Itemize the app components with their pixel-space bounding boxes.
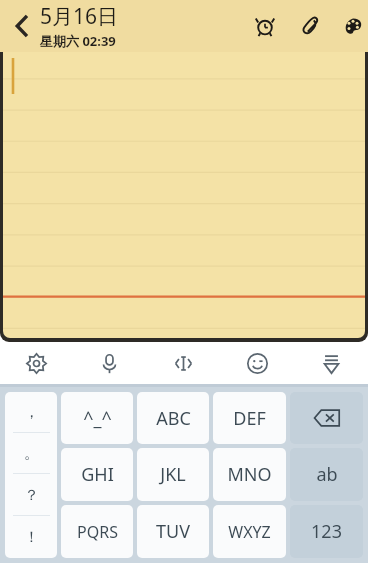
button[interactable]: MNO <box>213 448 286 501</box>
button[interactable]: Back <box>6 6 40 46</box>
staticText: JKL <box>160 462 186 487</box>
button[interactable]: PQRS <box>61 505 133 558</box>
staticText: TUV <box>156 519 190 544</box>
staticText: ！ <box>24 528 39 547</box>
button[interactable]: Settings <box>0 342 73 384</box>
button[interactable]: DEF <box>213 392 286 444</box>
button[interactable] <box>0 52 368 342</box>
button[interactable]: Emoji <box>220 342 294 384</box>
button[interactable]: WXYZ <box>213 505 286 558</box>
button[interactable]: ^_^ <box>61 392 133 444</box>
button[interactable]: 123 <box>290 505 363 558</box>
staticText: MNO <box>227 462 272 487</box>
button[interactable]: ， <box>5 392 57 558</box>
button[interactable]: Alarm <box>248 9 282 43</box>
button[interactable]: Delete <box>290 392 363 444</box>
staticText: ， <box>24 403 39 422</box>
staticText: 星期六 02:39 <box>40 32 116 50</box>
button[interactable]: Attach <box>292 9 326 43</box>
button[interactable]: Hide keyboard <box>294 342 368 384</box>
staticText: PQRS <box>77 521 118 543</box>
staticText: GHI <box>81 462 114 487</box>
staticText: ab <box>316 462 338 487</box>
staticText: ^_^ <box>83 406 112 431</box>
button[interactable]: Move cursor <box>146 342 220 384</box>
staticText: 。 <box>24 444 39 463</box>
button[interactable]: Voice input <box>73 342 146 384</box>
staticText: DEF <box>233 406 266 431</box>
button[interactable]: ab <box>290 448 363 501</box>
staticText: ABC <box>156 406 191 431</box>
button[interactable]: Color <box>336 9 368 43</box>
staticText: 5月16日 <box>40 2 119 31</box>
staticText: ？ <box>24 486 39 505</box>
staticText: 123 <box>311 519 342 544</box>
button[interactable]: GHI <box>61 448 133 501</box>
staticText: WXYZ <box>228 521 271 543</box>
button[interactable]: ABC <box>137 392 209 444</box>
button[interactable]: TUV <box>137 505 209 558</box>
button[interactable]: JKL <box>137 448 209 501</box>
